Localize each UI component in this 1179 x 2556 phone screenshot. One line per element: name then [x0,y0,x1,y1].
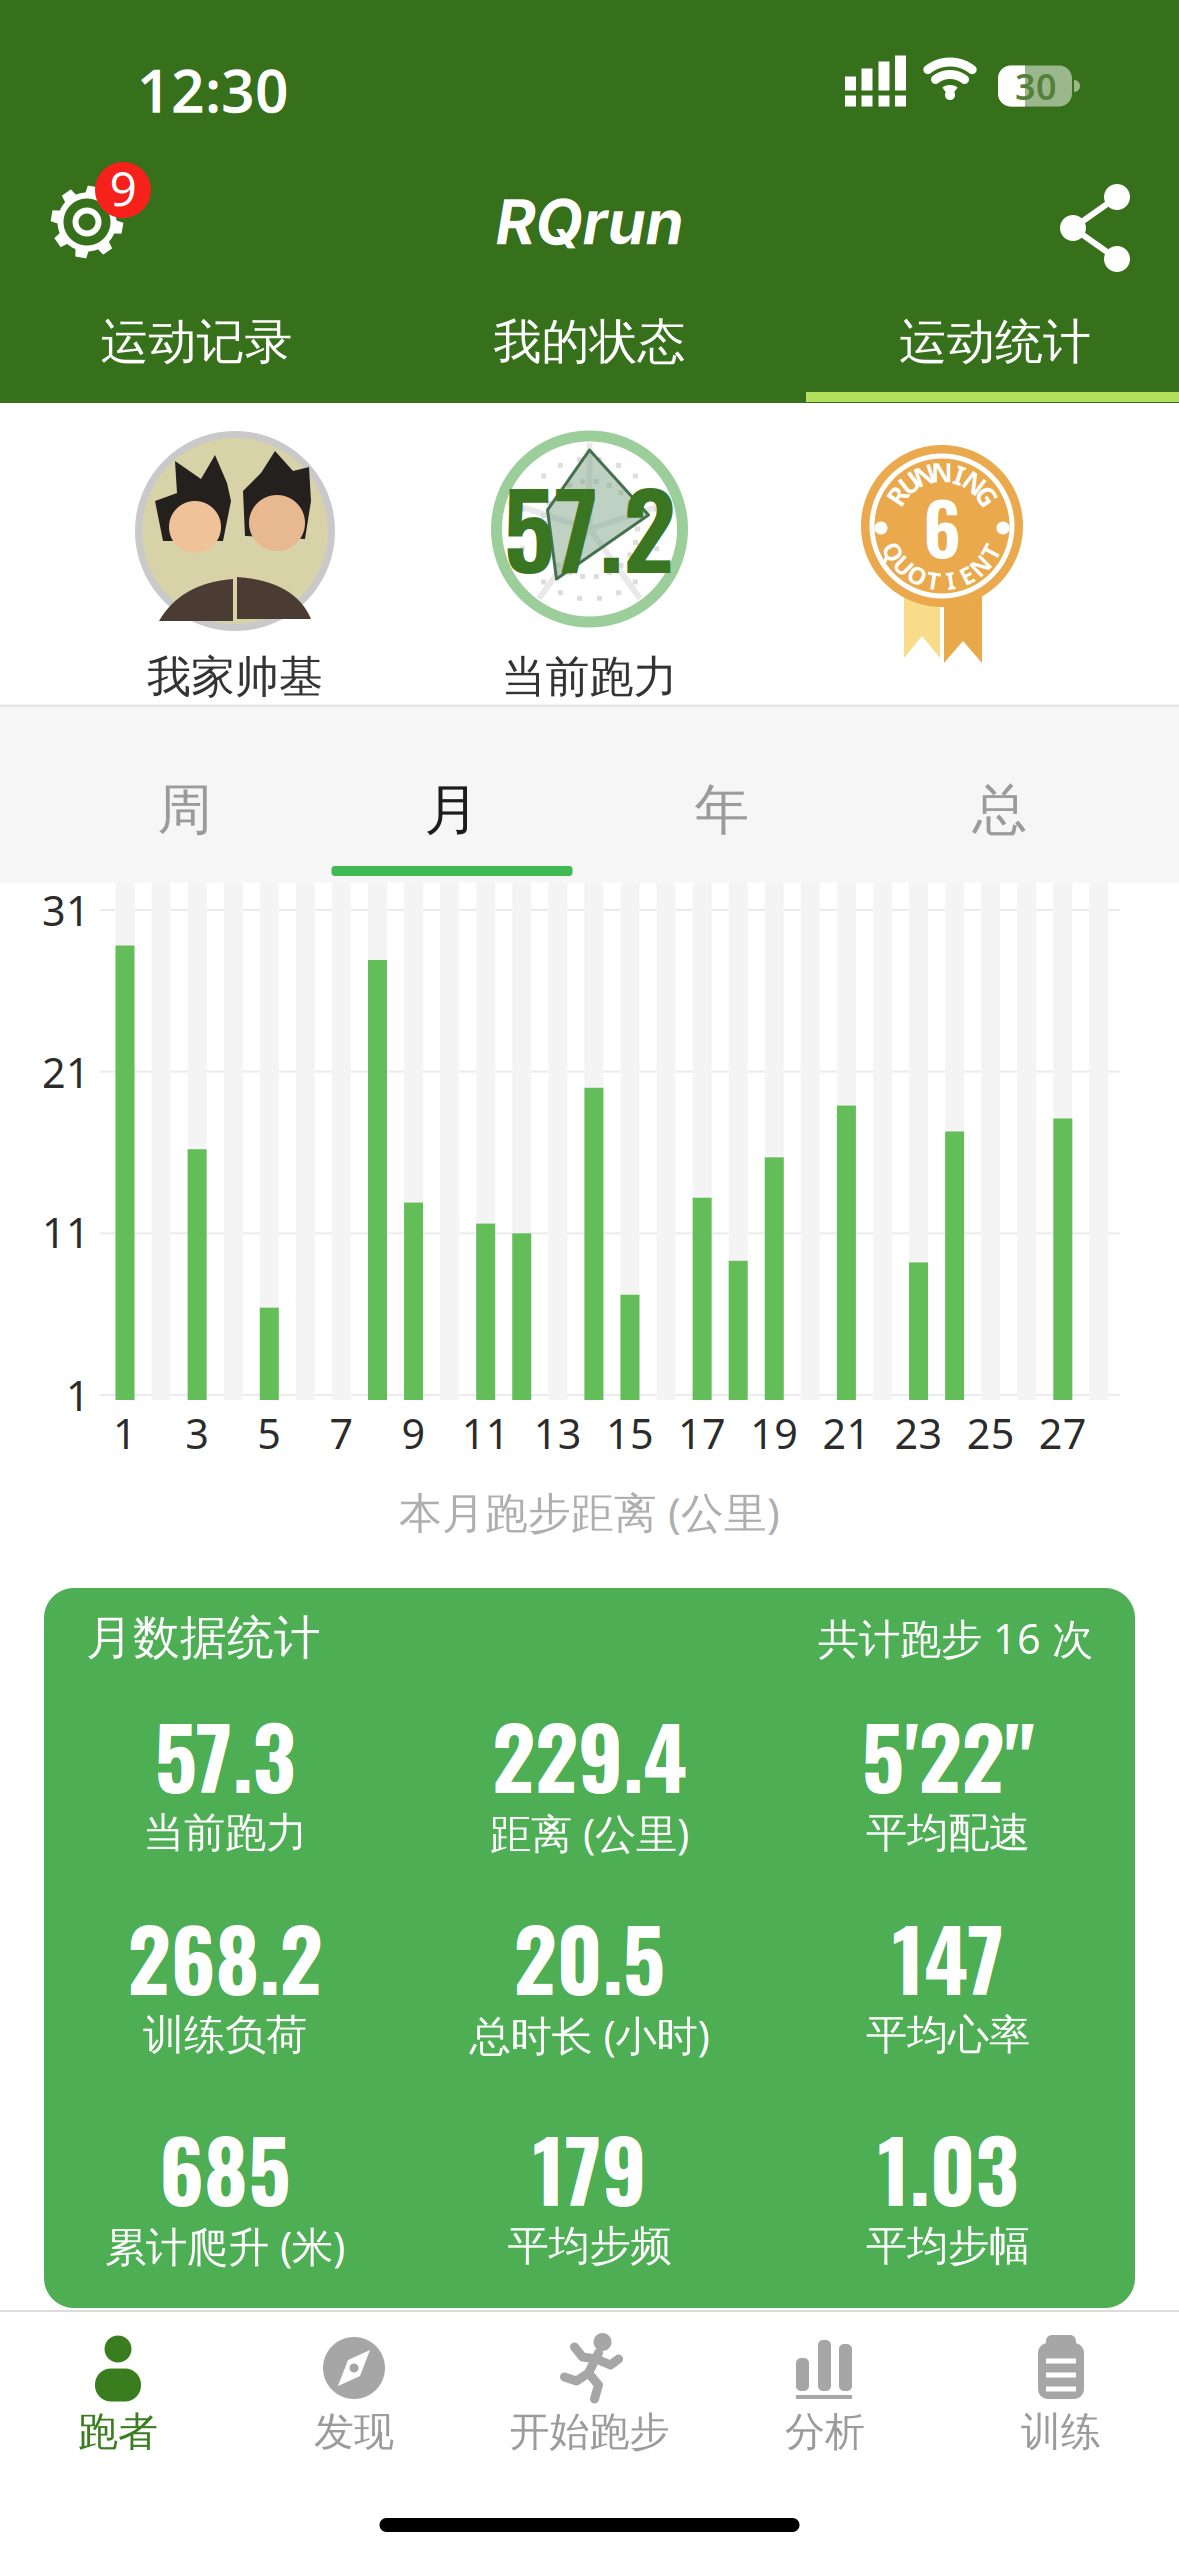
staticText: 1.03 [877,2106,1018,2230]
staticText: 3 [185,1406,209,1460]
staticText: 累计爬升 (米) [105,2219,345,2273]
staticText: 本月跑步距离 (公里) [399,1484,780,1540]
button[interactable]: 运动记录 [0,297,393,387]
staticText: 20.5 [513,1895,665,2019]
staticText: 年 [694,776,749,843]
staticText: 总 [972,776,1027,843]
staticText: 30 [1015,62,1057,110]
staticText: 当前跑力 [501,650,677,704]
staticText: 57.2 [503,449,676,603]
staticText: 训练负荷 [143,2010,307,2060]
staticText: 共计跑步 16 次 [818,1611,1093,1665]
staticText: 月数据统计 [86,1609,321,1667]
button[interactable]: Share [1035,172,1145,282]
staticText: 平均心率 [866,2010,1030,2060]
staticText: 我的状态 [493,312,685,371]
staticText: 1 [66,1368,90,1422]
staticText: R [889,478,906,513]
button[interactable]: Settings [20,137,190,287]
staticText: 运动记录 [100,312,292,371]
staticText: 7 [329,1406,353,1460]
staticText: 6 [923,473,961,579]
staticText: Q [884,536,903,568]
staticText: 9 [402,1406,426,1460]
staticText: G [977,478,996,513]
button[interactable]: Profile [135,402,335,702]
button[interactable]: 训练 [951,2320,1171,2460]
staticText: U [899,465,919,501]
button[interactable]: 跑者 [8,2320,228,2460]
button[interactable]: 月 [332,750,572,870]
staticText: 当前跑力 [143,1808,307,1858]
staticText: 15 [606,1406,654,1460]
staticText: T [984,536,998,568]
staticText: I [946,564,955,596]
staticText: 268.2 [127,1895,322,2019]
button[interactable]: 发现 [244,2320,464,2460]
staticText: 5 [257,1406,281,1460]
staticText: 我家帅基 [147,650,323,704]
staticText: 11 [42,1205,90,1259]
staticText: 平均步频 [507,2221,671,2271]
staticText: N [964,465,986,501]
staticText: 运动统计 [899,312,1091,371]
staticText: 发现 [314,2407,394,2456]
staticText: 147 [892,1895,1004,2019]
button[interactable]: 分析 [715,2320,935,2460]
staticText: 平均配速 [866,1808,1030,1858]
staticText: 19 [750,1406,798,1460]
staticText: 距离 (公里) [490,1806,689,1860]
staticText: 训练 [1021,2407,1101,2456]
staticText: 5'22" [861,1693,1034,1817]
staticText: 开始跑步 [509,2407,669,2456]
button[interactable]: 总 [880,750,1120,870]
staticText: 月 [424,776,479,843]
staticText: 1 [113,1406,137,1460]
staticText: I [954,457,964,492]
staticText: 229.4 [492,1693,687,1817]
staticText: N [914,457,936,492]
staticText: 周 [157,776,212,843]
button[interactable]: 运动统计 [798,297,1179,387]
staticText: T [926,564,940,596]
button[interactable]: 开始跑步 [479,2320,699,2460]
staticText: 21 [42,1045,90,1099]
staticText: 685 [159,2106,291,2230]
staticText: 跑者 [78,2407,158,2456]
staticText: 平均步幅 [866,2221,1030,2271]
staticText: 11 [462,1406,510,1460]
staticText: O [908,559,927,591]
staticText: 179 [532,2106,646,2230]
staticText: RQrun [495,185,683,259]
staticText: 57.3 [154,1693,295,1817]
staticText: U [895,549,913,581]
staticText: 21 [822,1406,870,1460]
button[interactable]: 我的状态 [393,297,786,387]
staticText: 31 [42,883,90,937]
button[interactable]: 年 [602,750,842,870]
staticText: 分析 [785,2407,865,2456]
staticText: 27 [1039,1406,1087,1460]
staticText: 23 [894,1406,942,1460]
staticText: 17 [678,1406,726,1460]
button[interactable]: 周 [65,750,305,870]
staticText: 9 [109,156,136,220]
staticText: 12:30 [137,51,289,129]
staticText: 13 [534,1406,582,1460]
staticText: N [931,454,953,490]
staticText: N [970,549,990,581]
staticText: 总时长 (小时) [469,2008,709,2062]
staticText: E [960,559,973,591]
staticText: 25 [967,1406,1015,1460]
